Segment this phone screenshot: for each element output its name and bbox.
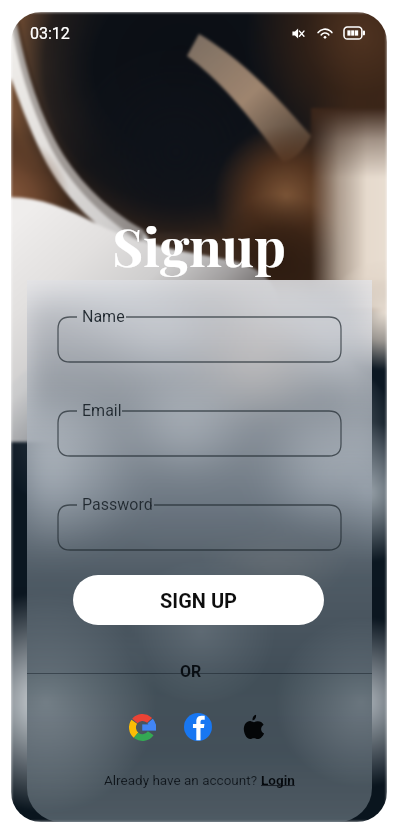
button[interactable]: Email: [58, 399, 341, 456]
button[interactable]: Name: [58, 305, 341, 362]
staticText: Login: [261, 772, 295, 788]
staticText: Already have an account?: [104, 772, 261, 788]
button[interactable]: SIGN UP: [73, 575, 324, 625]
button[interactable]: Password: [58, 493, 341, 550]
button[interactable]: Sign up with Google: [123, 708, 161, 746]
staticText: SIGN UP: [160, 589, 237, 612]
staticText: Email: [82, 401, 122, 420]
staticText: Name: [82, 307, 125, 326]
button[interactable]: Sign up with Apple: [235, 708, 273, 746]
staticText: 03:12: [30, 24, 70, 43]
button[interactable]: Sign up with Facebook: [179, 708, 217, 746]
staticText: Signup: [112, 210, 286, 281]
staticText: OR: [180, 662, 202, 681]
staticText: Password: [82, 495, 153, 514]
button[interactable]: Login: [261, 772, 295, 788]
